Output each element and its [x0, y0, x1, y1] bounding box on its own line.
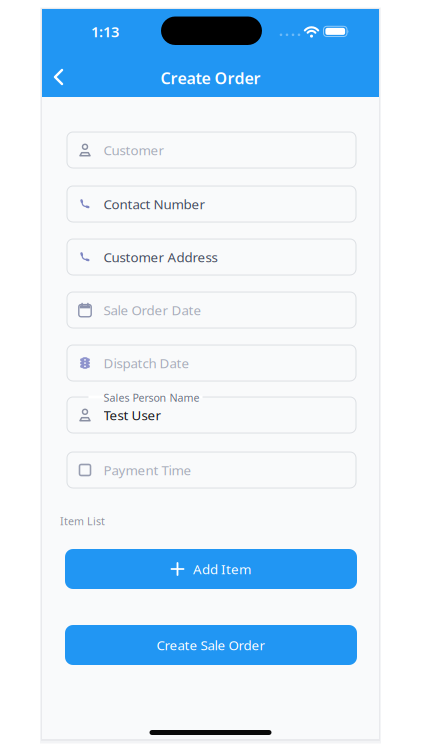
button[interactable]: Dispatch Date [67, 345, 356, 381]
staticText: Test User [103, 406, 161, 424]
staticText: Add Item [193, 560, 251, 578]
staticText: Customer Address [103, 248, 217, 266]
button[interactable]: Contact Number [67, 186, 356, 222]
button[interactable]: Add Item [65, 549, 357, 589]
button[interactable]: Create Sale Order [65, 625, 357, 665]
button[interactable]: Back [47, 67, 77, 86]
staticText: Dispatch Date [103, 354, 189, 372]
staticText: Payment Time [103, 461, 191, 479]
button[interactable]: Customer [67, 132, 356, 168]
button[interactable]: Sale Order Date [67, 292, 356, 328]
button[interactable]: Customer Address [67, 239, 356, 275]
staticText: Sale Order Date [103, 301, 201, 319]
staticText: Item List [60, 514, 105, 528]
staticText: Create Sale Order [156, 636, 265, 654]
button[interactable]: Test User [67, 397, 356, 433]
staticText: Sales Person Name [103, 390, 199, 405]
button[interactable]: Payment Time [67, 452, 356, 488]
staticText: Customer [103, 141, 164, 159]
staticText: Contact Number [103, 195, 205, 213]
staticText: Create Order [160, 67, 260, 89]
staticText: 1:13 [91, 22, 119, 41]
